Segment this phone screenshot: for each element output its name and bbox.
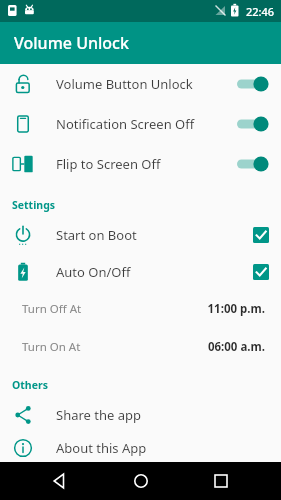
button[interactable]: Start on Boot [0,216,281,253]
staticText: Flip to Screen Off [56,155,235,173]
staticText: About this App [56,439,147,457]
button[interactable]: Volume Button Unlock [0,64,281,104]
staticText: 06:00 a.m. [207,339,265,355]
button[interactable]: Home [121,462,161,500]
staticText: Turn Off At [22,301,207,317]
button[interactable]: Auto On/Off [0,253,281,290]
staticText: 11:00 p.m. [207,301,265,317]
button[interactable]: Turn Off At [0,290,281,328]
button[interactable]: Turn On At [0,328,281,366]
staticText: Volume Unlock [14,32,129,54]
staticText: Auto On/Off [56,263,253,281]
staticText: Others [12,378,48,392]
staticText: Volume Button Unlock [56,75,235,93]
staticText: Turn On At [22,339,207,355]
button[interactable]: Notification Screen Off [0,104,281,144]
button[interactable]: Recent apps [201,462,241,500]
staticText: Start on Boot [56,226,253,244]
button[interactable]: Back [40,462,80,500]
button[interactable]: About this App [0,433,281,462]
staticText: Notification Screen Off [56,115,235,133]
button[interactable]: Share the app [0,396,281,433]
staticText: 22:46 [246,4,275,19]
staticText: Settings [12,198,56,212]
staticText: Share the app [56,406,142,424]
button[interactable]: Flip to Screen Off [0,144,281,184]
